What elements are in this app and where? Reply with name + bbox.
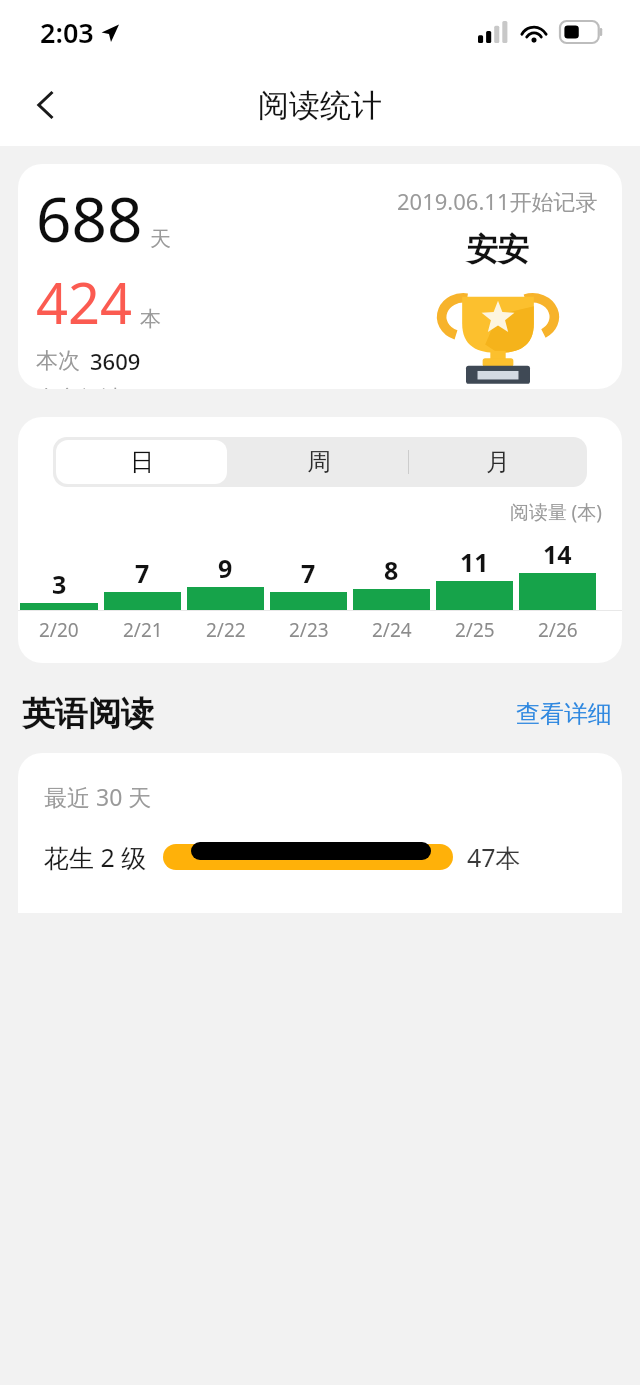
button[interactable]: Back bbox=[18, 77, 74, 133]
staticText: 7 bbox=[135, 556, 150, 590]
staticText: 2/22 bbox=[206, 617, 246, 643]
staticText: 47本 bbox=[467, 840, 521, 874]
staticText: 2019.06.11开始记录 bbox=[397, 186, 598, 216]
staticText: 2/23 bbox=[289, 617, 329, 643]
staticText: 2/26 bbox=[538, 617, 578, 643]
staticText: 3 bbox=[52, 567, 67, 601]
staticText: 2/21 bbox=[123, 617, 163, 643]
button[interactable]: 月 bbox=[409, 437, 587, 487]
staticText: 本 bbox=[140, 306, 161, 332]
staticText: 阅读量 (本) bbox=[18, 499, 602, 525]
staticText: 8 bbox=[384, 553, 399, 587]
staticText: 688 bbox=[36, 176, 143, 260]
staticText: 2:03 bbox=[40, 14, 94, 51]
staticText: 安安 bbox=[467, 230, 529, 269]
staticText: 7 bbox=[301, 556, 316, 590]
staticText: 14 bbox=[543, 537, 572, 571]
button[interactable]: 日 bbox=[56, 440, 227, 484]
staticText: 2/20 bbox=[39, 617, 79, 643]
staticText: 月 bbox=[486, 447, 510, 477]
staticText: 花生 2 级 bbox=[44, 840, 147, 874]
staticText: 阅读统计 bbox=[258, 86, 382, 125]
staticText: 本次 bbox=[36, 347, 80, 375]
staticText: 424 bbox=[36, 264, 133, 340]
button[interactable]: 查看详细 bbox=[510, 693, 618, 735]
staticText: 3609 bbox=[90, 346, 141, 376]
staticText: 查看详细 bbox=[516, 699, 612, 729]
staticText: 周 bbox=[307, 447, 331, 477]
staticText: 2/25 bbox=[455, 617, 495, 643]
staticText: 日 bbox=[130, 447, 154, 477]
staticText: 11 bbox=[460, 545, 489, 579]
staticText: 中文阅读 bbox=[36, 385, 124, 389]
staticText: 2/24 bbox=[372, 617, 412, 643]
staticText: 天 bbox=[150, 226, 171, 252]
staticText: 英语阅读 bbox=[22, 693, 154, 735]
staticText: 9 bbox=[218, 551, 233, 585]
staticText: 最近 30 天 bbox=[44, 781, 152, 812]
button[interactable]: 周 bbox=[230, 437, 408, 487]
